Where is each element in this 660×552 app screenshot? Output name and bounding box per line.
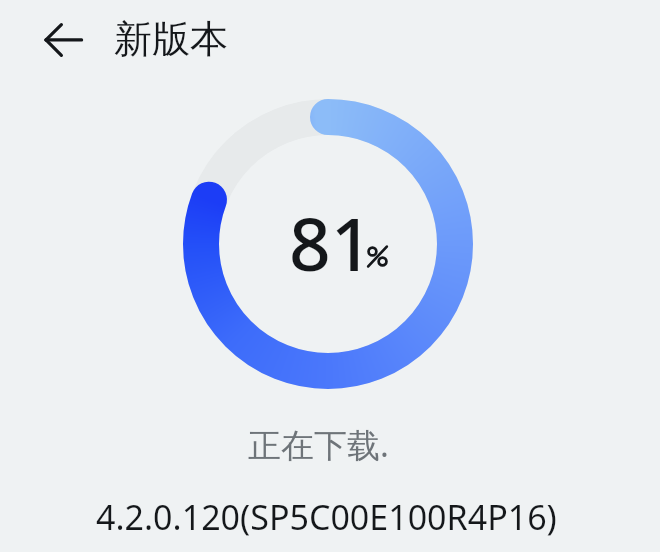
staticText: 81 [289,193,373,292]
staticText: 4.2.0.120(SP5C00E100R4P16) [96,494,557,540]
staticText: 正在下载. [248,422,389,467]
button[interactable]: Back [28,14,96,66]
staticText: 新版本 [114,15,228,63]
